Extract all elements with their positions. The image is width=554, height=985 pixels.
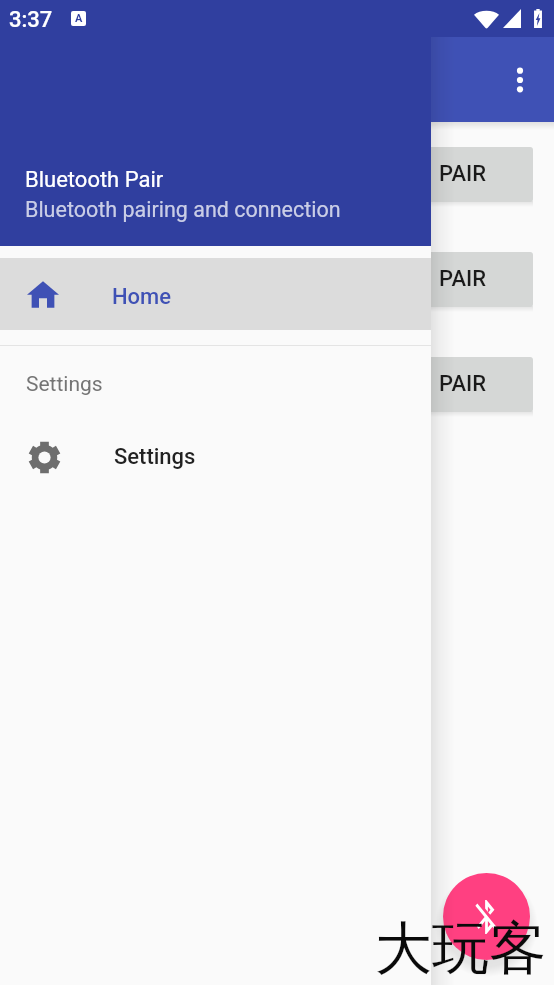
staticText: PAIR [439,161,487,187]
button[interactable]: PAIR [420,357,533,412]
button[interactable]: More options [496,56,544,104]
button[interactable]: Home [0,258,431,330]
staticText: A [75,12,83,25]
staticText: PAIR [439,371,487,397]
staticText: Settings [26,372,103,397]
button[interactable]: PAIR [420,147,533,202]
staticText: Home [112,284,172,310]
staticText: Bluetooth Pair [25,167,164,193]
staticText: 大玩客 [375,913,546,985]
button[interactable]: Settings [0,428,431,486]
staticText: 3:37 [9,7,53,33]
staticText: Settings [114,444,196,470]
button[interactable]: Turn bluetooth off [443,873,530,960]
button[interactable]: PAIR [420,252,533,307]
staticText: Bluetooth pairing and connection [25,197,341,222]
staticText: PAIR [439,266,487,292]
